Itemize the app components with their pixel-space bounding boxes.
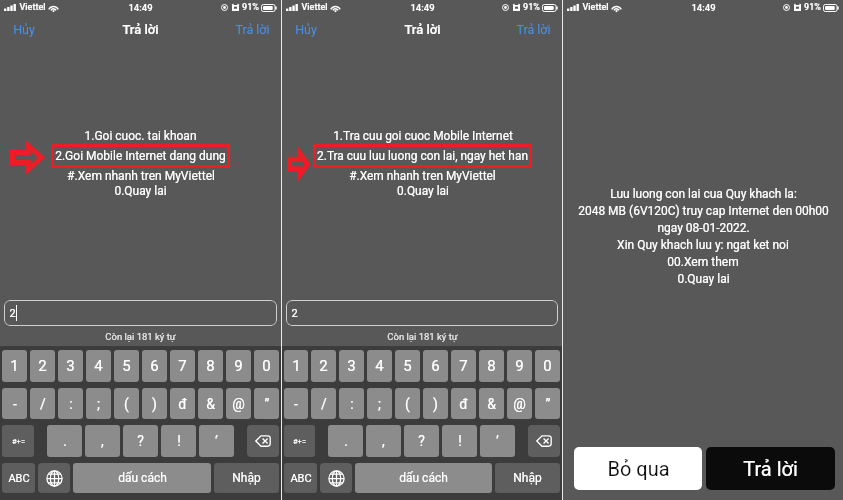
staticText: đ	[178, 396, 187, 412]
button[interactable]: Hủy	[0, 18, 47, 41]
staticText: .	[344, 433, 348, 449]
staticText: Nhập	[513, 471, 542, 485]
button[interactable]: :	[58, 388, 83, 419]
button[interactable]: @	[226, 388, 251, 419]
button[interactable]: 0	[535, 350, 560, 382]
button[interactable]: 8	[198, 350, 223, 382]
button[interactable]: /	[30, 388, 55, 419]
button[interactable]: 6	[423, 350, 448, 382]
staticText: Trả lời	[235, 22, 270, 37]
button[interactable]: 5	[114, 350, 139, 382]
button[interactable]: -	[2, 388, 27, 419]
staticText: #.Xem nhanh tren MyViettel	[349, 169, 496, 183]
staticText: ?	[418, 433, 425, 449]
staticText: 9	[234, 357, 243, 375]
staticText: ;	[378, 396, 381, 412]
staticText: 2.Tra cuu luu luong con lai, ngay het ha…	[317, 149, 528, 163]
button[interactable]: 7	[451, 350, 476, 382]
staticText: 2	[38, 357, 47, 375]
button[interactable]: #+=	[2, 425, 34, 457]
button[interactable]: Bỏ qua	[574, 447, 702, 490]
staticText: Xin Quy khach luu y: ngat ket noi	[617, 238, 789, 252]
button[interactable]: 2	[286, 300, 558, 326]
button[interactable]: 4	[367, 350, 392, 382]
staticText: 3	[66, 357, 75, 375]
button[interactable]: (	[395, 388, 420, 419]
staticText: &	[487, 396, 496, 412]
button[interactable]: :	[339, 388, 364, 419]
button[interactable]: &	[479, 388, 504, 419]
button[interactable]: 2	[30, 350, 55, 382]
staticText: 14:49	[410, 2, 435, 13]
staticText: ”	[545, 396, 551, 412]
staticText: /	[40, 396, 46, 412]
staticText: 3	[347, 357, 356, 375]
button[interactable]: Backspace	[528, 425, 560, 457]
button[interactable]: .	[328, 425, 363, 457]
button[interactable]: Change keyboard language	[38, 463, 70, 493]
button[interactable]: Trả lời	[706, 447, 835, 490]
button[interactable]: ?	[123, 425, 158, 457]
button[interactable]: 9	[507, 350, 532, 382]
button[interactable]: đ	[451, 388, 476, 419]
staticText: Viettel	[19, 2, 46, 13]
button[interactable]: Nhập	[214, 463, 279, 493]
button[interactable]: 2	[4, 300, 277, 326]
button[interactable]: @	[507, 388, 532, 419]
button[interactable]: 5	[395, 350, 420, 382]
button[interactable]: 8	[479, 350, 504, 382]
button[interactable]: )	[142, 388, 167, 419]
button[interactable]: ,	[85, 425, 120, 457]
staticText: Nhập	[232, 471, 261, 485]
button[interactable]: (	[114, 388, 139, 419]
button[interactable]: /	[311, 388, 336, 419]
staticText: đ	[459, 396, 468, 412]
button[interactable]: ”	[254, 388, 279, 419]
button[interactable]: Backspace	[247, 425, 279, 457]
staticText: Viettel	[582, 2, 609, 13]
staticText: 8	[206, 357, 215, 375]
button[interactable]: ?	[404, 425, 439, 457]
button[interactable]: Nhập	[495, 463, 560, 493]
button[interactable]: 1	[2, 350, 27, 382]
button[interactable]: 0	[254, 350, 279, 382]
button[interactable]: !	[161, 425, 196, 457]
button[interactable]: Hủy	[282, 18, 329, 41]
button[interactable]: 9	[226, 350, 251, 382]
button[interactable]: ;	[86, 388, 111, 419]
button[interactable]: ABC	[2, 463, 35, 493]
staticText: 9	[515, 357, 524, 375]
button[interactable]: &	[198, 388, 223, 419]
button[interactable]: #+=	[284, 425, 315, 457]
button[interactable]: .	[47, 425, 82, 457]
button[interactable]: Trả lời	[223, 18, 281, 41]
button[interactable]: đ	[170, 388, 195, 419]
button[interactable]: ,	[366, 425, 401, 457]
button[interactable]: 3	[58, 350, 83, 382]
staticText: 2.Goi Mobile Internet dang dung	[55, 149, 226, 163]
button[interactable]: 7	[170, 350, 195, 382]
staticText: #.Xem nhanh tren MyViettel	[67, 169, 215, 183]
button[interactable]: -	[284, 388, 308, 419]
staticText: !	[458, 433, 462, 449]
button[interactable]: )	[423, 388, 448, 419]
staticText: 91%	[242, 2, 259, 13]
button[interactable]: Change keyboard language	[320, 463, 352, 493]
button[interactable]: dấu cách	[355, 463, 492, 493]
staticText: (	[405, 396, 410, 412]
button[interactable]: 2	[311, 350, 336, 382]
button[interactable]: 6	[142, 350, 167, 382]
button[interactable]: ’	[199, 425, 234, 457]
button[interactable]: ABC	[284, 463, 317, 493]
button[interactable]: 1	[284, 350, 308, 382]
staticText: Còn lại 181 ký tự	[387, 331, 458, 342]
button[interactable]: 3	[339, 350, 364, 382]
button[interactable]: ’	[480, 425, 515, 457]
button[interactable]: ”	[535, 388, 560, 419]
button[interactable]: Trả lời	[504, 18, 562, 41]
button[interactable]: ;	[367, 388, 392, 419]
button[interactable]: 4	[86, 350, 111, 382]
button[interactable]: dấu cách	[73, 463, 211, 493]
staticText: 7	[459, 357, 468, 375]
button[interactable]: !	[442, 425, 477, 457]
